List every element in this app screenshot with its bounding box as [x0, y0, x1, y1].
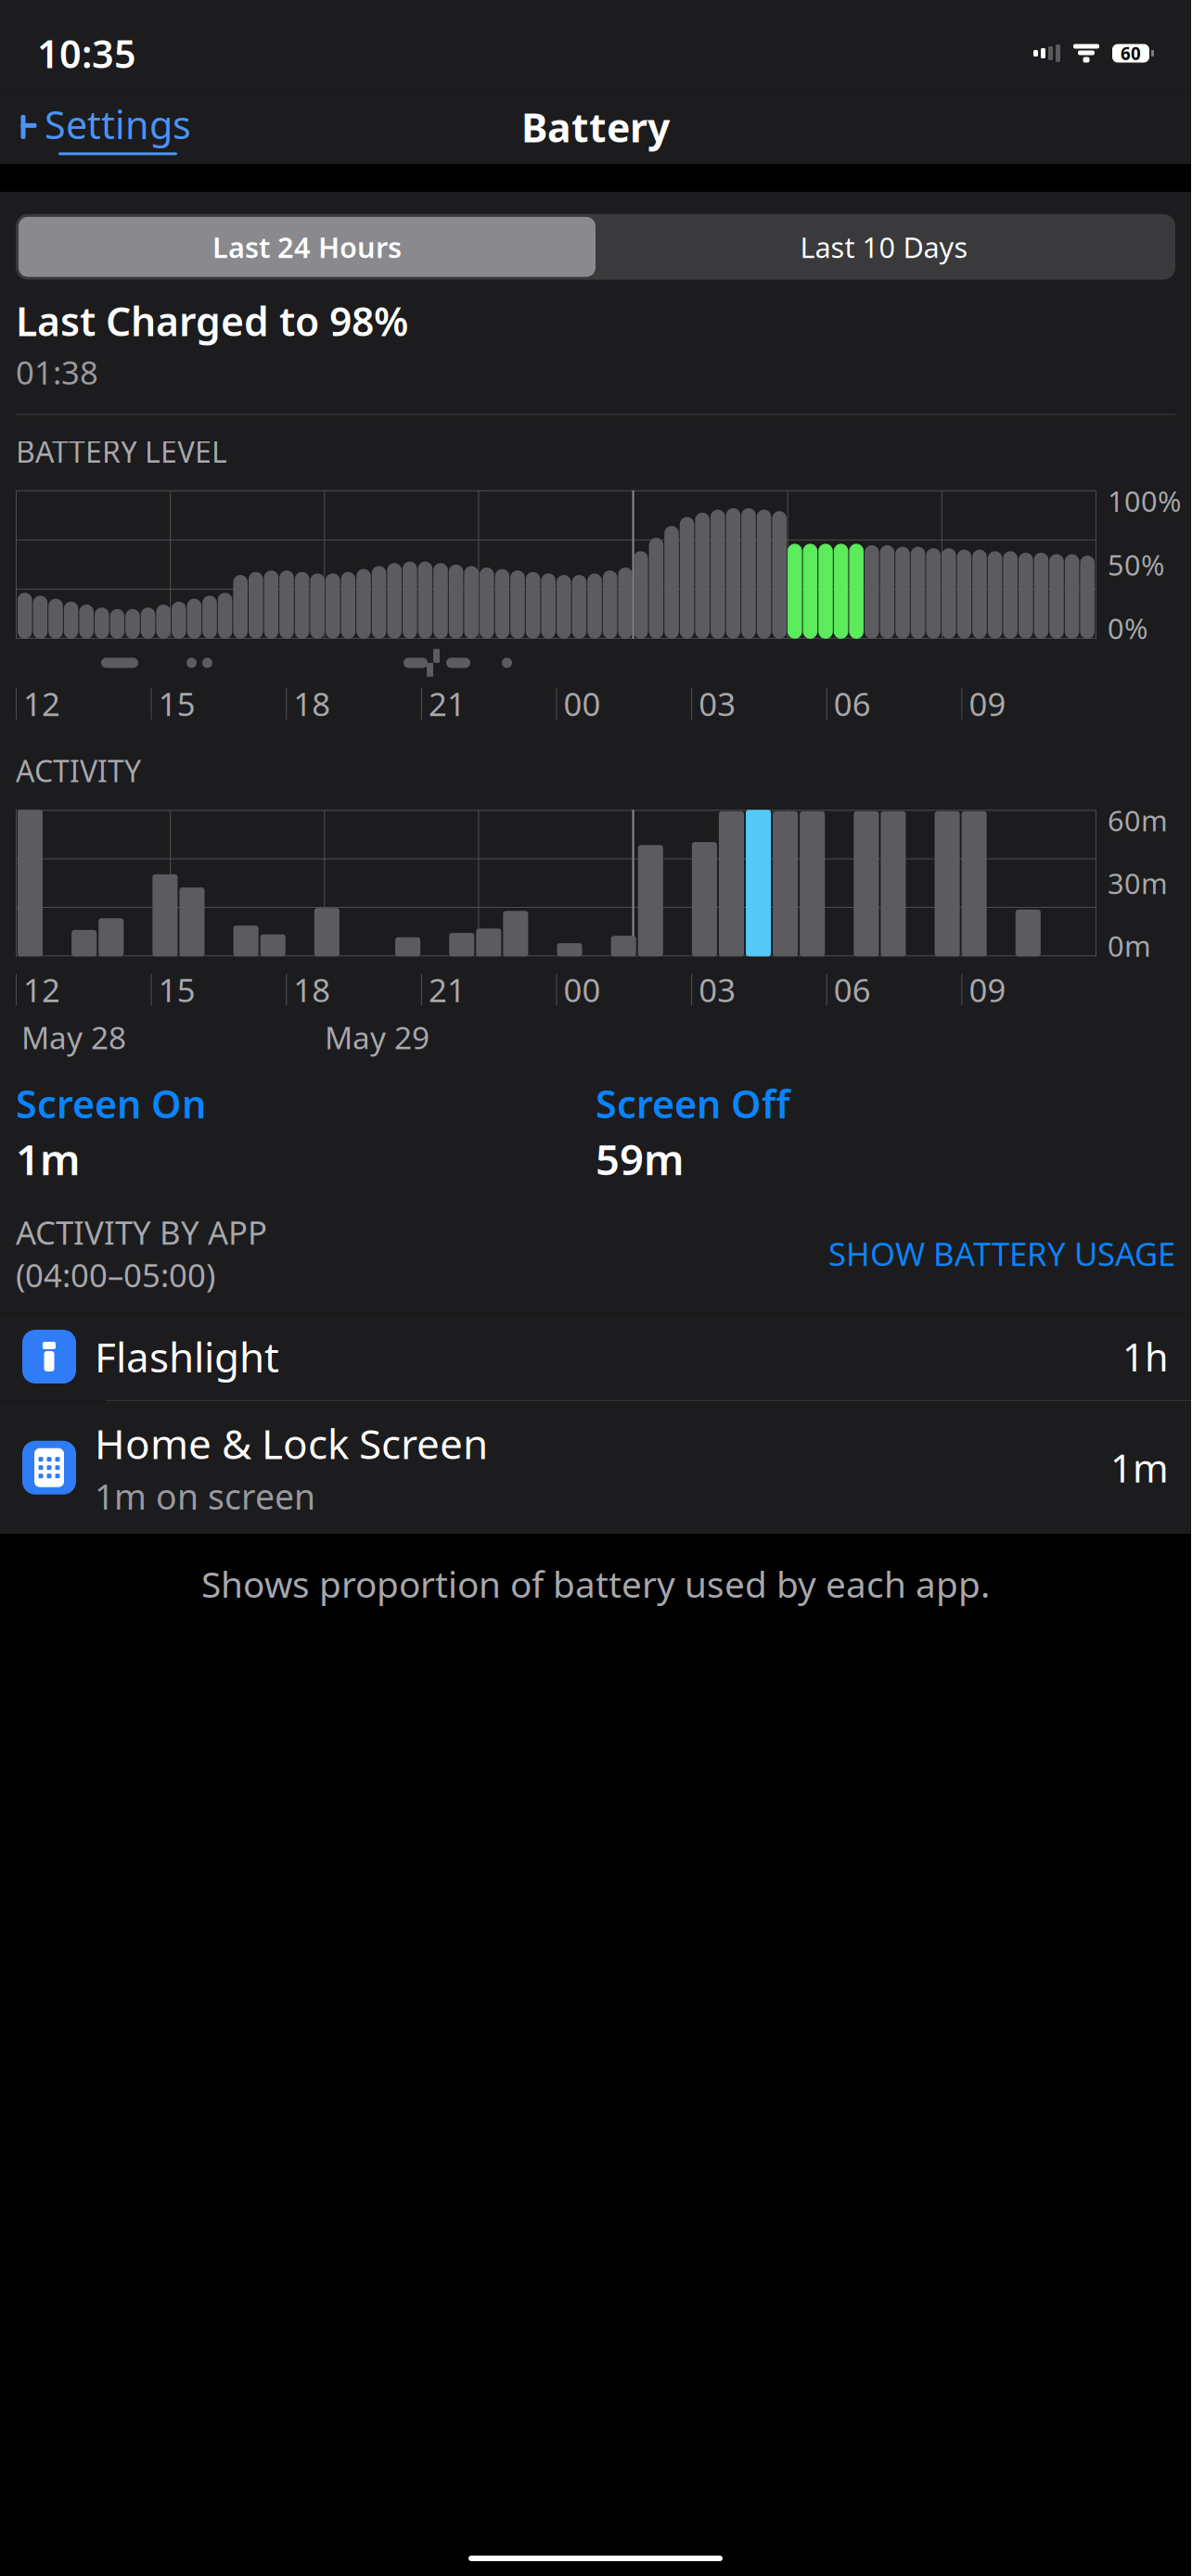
- staticText: 1m: [1110, 1442, 1169, 1493]
- staticText: 30m: [1108, 864, 1168, 902]
- staticText: Last Charged to 98%: [16, 295, 408, 347]
- staticText: Flashlight: [95, 1330, 279, 1384]
- staticText: Screen On: [16, 1078, 206, 1129]
- staticText: 06: [834, 682, 871, 725]
- staticText: 21: [428, 968, 466, 1011]
- staticText: 0%: [1108, 609, 1147, 647]
- staticText: 18: [293, 968, 331, 1011]
- staticText: 60m: [1108, 801, 1168, 839]
- staticText: 00: [564, 682, 601, 725]
- staticText: 03: [699, 968, 736, 1011]
- button[interactable]: Last 24 Hours: [19, 217, 596, 277]
- staticText: Settings: [45, 99, 191, 150]
- staticText: 1m: [16, 1131, 81, 1187]
- staticText: 15: [158, 682, 195, 725]
- staticText: 12: [23, 968, 60, 1011]
- staticText: Shows proportion of battery used by each…: [201, 1560, 990, 1607]
- staticText: 03: [699, 682, 736, 725]
- staticText: ACTIVITY: [16, 751, 141, 790]
- staticText: 60: [1121, 42, 1141, 65]
- staticText: 00: [564, 968, 601, 1011]
- staticText: Home & Lock Screen: [95, 1416, 488, 1470]
- staticText: ACTIVITY BY APP: [16, 1211, 267, 1253]
- staticText: 10:35: [37, 28, 136, 79]
- staticText: 09: [969, 682, 1006, 725]
- button[interactable]: Last 10 Days: [596, 217, 1173, 277]
- staticText: Last 24 Hours: [212, 228, 402, 266]
- staticText: May 28: [21, 1017, 126, 1058]
- button[interactable]: SHOW BATTERY USAGE: [828, 1228, 1175, 1278]
- staticText: 06: [834, 968, 871, 1011]
- staticText: 18: [293, 682, 331, 725]
- staticText: 01:38: [16, 351, 98, 393]
- button[interactable]: Settings: [6, 91, 206, 163]
- staticText: 21: [428, 682, 466, 725]
- staticText: 15: [158, 968, 195, 1011]
- staticText: Screen Off: [596, 1078, 790, 1129]
- staticText: (04:00–05:00): [16, 1254, 215, 1296]
- staticText: May 29: [325, 1017, 429, 1058]
- staticText: 59m: [596, 1131, 685, 1187]
- staticText: 0m: [1108, 927, 1151, 965]
- staticText: 09: [969, 968, 1006, 1011]
- staticText: Battery: [521, 101, 670, 153]
- staticText: 12: [23, 682, 60, 725]
- button[interactable]: Home & Lock Screen: [0, 1401, 1191, 1534]
- staticText: BATTERY LEVEL: [16, 431, 227, 471]
- staticText: 50%: [1108, 546, 1164, 583]
- staticText: SHOW BATTERY USAGE: [828, 1232, 1175, 1275]
- staticText: Last 10 Days: [800, 228, 968, 266]
- staticText: 1h: [1122, 1331, 1169, 1382]
- staticText: 100%: [1108, 482, 1181, 520]
- staticText: 1m on screen: [95, 1473, 315, 1519]
- button[interactable]: Flashlight: [0, 1313, 1191, 1400]
